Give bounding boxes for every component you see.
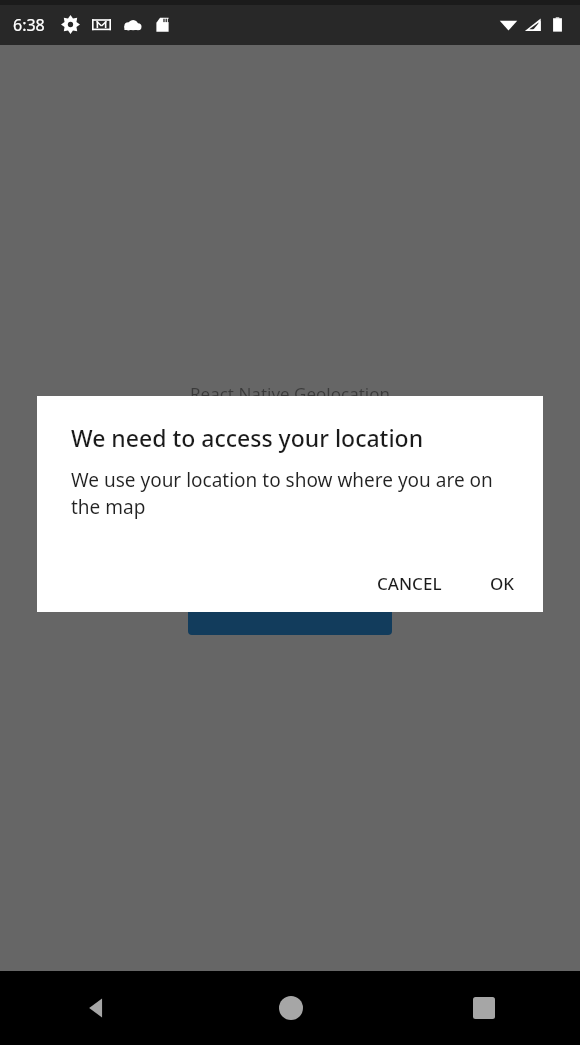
staticText: CANCEL bbox=[377, 572, 442, 595]
staticText: React Native Geolocation bbox=[190, 382, 390, 405]
button[interactable]: Recent apps bbox=[387, 971, 580, 1045]
button[interactable]: CANCEL bbox=[363, 562, 456, 605]
staticText: 6:38 bbox=[13, 14, 45, 36]
staticText: OK bbox=[490, 572, 515, 595]
button[interactable]: Back bbox=[0, 971, 194, 1045]
button[interactable] bbox=[188, 593, 392, 635]
staticText: We need to access your location bbox=[71, 422, 424, 453]
staticText: We use your location to show where you a… bbox=[71, 467, 513, 520]
button[interactable]: Home bbox=[194, 971, 387, 1045]
button[interactable]: OK bbox=[476, 562, 529, 605]
